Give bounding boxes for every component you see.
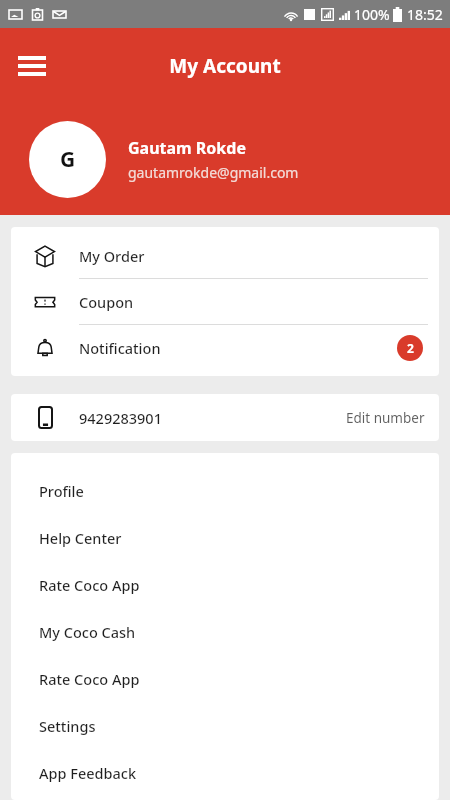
staticText: App Feedback <box>39 763 137 783</box>
button[interactable]: Settings <box>11 702 439 749</box>
button[interactable]: Help Center <box>11 514 439 561</box>
staticText: Notification <box>79 338 397 358</box>
button[interactable]: Profile <box>11 467 439 514</box>
button[interactable]: App Feedback <box>11 749 439 796</box>
staticText: My Account <box>169 53 281 79</box>
staticText: 2 <box>407 340 414 356</box>
button[interactable]: Rate Coco App <box>11 655 439 702</box>
staticText: G <box>60 145 76 174</box>
staticText: Edit number <box>346 409 425 427</box>
button[interactable]: 9429283901 <box>11 394 439 441</box>
button[interactable]: Coupon <box>11 279 439 325</box>
button[interactable]: Notification <box>11 325 439 370</box>
button[interactable]: Rate Coco App <box>11 561 439 608</box>
staticText: gautamrokde@gmail.com <box>128 163 299 182</box>
button[interactable]: My Order <box>11 233 439 279</box>
staticText: Help Center <box>39 528 122 548</box>
button[interactable]: Edit number <box>346 397 439 439</box>
staticText: Profile <box>39 481 84 501</box>
staticText: 9429283901 <box>79 408 346 428</box>
staticText: 18:52 <box>407 5 443 24</box>
button[interactable]: My Coco Cash <box>11 608 439 655</box>
staticText: Coupon <box>79 292 439 312</box>
staticText: Gautam Rokde <box>128 137 246 159</box>
staticText: My Coco Cash <box>39 622 136 642</box>
staticText: 100% <box>354 5 390 24</box>
staticText: Rate Coco App <box>39 575 140 595</box>
staticText: My Order <box>79 246 439 266</box>
staticText: Rate Coco App <box>39 669 140 689</box>
button[interactable]: Open navigation menu <box>10 46 54 86</box>
staticText: Settings <box>39 716 96 736</box>
